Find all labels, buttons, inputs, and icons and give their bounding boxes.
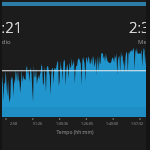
staticText: 2:38 xyxy=(129,17,150,37)
button[interactable]: 2:38 xyxy=(86,14,150,48)
staticText: Tempo (hh:mm) xyxy=(56,129,94,136)
staticText: Melhor xyxy=(138,38,150,46)
staticText: 1:40:00 xyxy=(106,121,118,126)
button[interactable]: 2:21 xyxy=(0,14,66,48)
button[interactable]: Gráfico de ritmo xyxy=(0,48,150,117)
staticText: 1:00:36 xyxy=(56,121,68,126)
staticText: 2:58 xyxy=(10,121,17,126)
staticText: 2:21 xyxy=(0,17,23,37)
staticText: 1:26:05 xyxy=(81,121,93,126)
staticText: Médio xyxy=(0,38,11,46)
staticText: 1:57:32 xyxy=(131,121,143,126)
staticText: 51:26 xyxy=(33,121,42,126)
